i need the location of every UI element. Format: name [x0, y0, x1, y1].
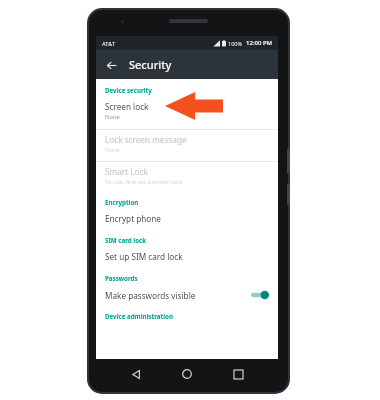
button[interactable]: Back [125, 363, 147, 385]
staticText: To use, first set a screen lock [105, 178, 183, 186]
staticText: Screen lock [105, 101, 149, 112]
button[interactable]: Home [176, 363, 198, 385]
button[interactable]: Recent apps [227, 363, 249, 385]
staticText: 12:00 PM [246, 39, 273, 47]
button[interactable]: Make passwords visible [96, 285, 278, 305]
staticText: Encryption [105, 198, 139, 206]
staticText: Device security [105, 86, 152, 94]
staticText: Smart Lock [105, 166, 148, 177]
button[interactable]: Encrypt phone [96, 209, 278, 228]
button: Smart Lock [96, 162, 278, 190]
staticText: AT&T [102, 40, 116, 47]
staticText: SIM card lock [105, 236, 147, 244]
staticText: Device administration [105, 312, 173, 320]
button: Lock screen message [96, 130, 278, 158]
staticText: None [105, 146, 120, 154]
staticText: Set up SIM card lock [105, 251, 183, 262]
button[interactable]: Screen lock [96, 97, 278, 125]
staticText: Lock screen message [105, 134, 187, 145]
staticText: Encrypt phone [105, 213, 161, 224]
button[interactable]: Make passwords visible toggle [250, 289, 270, 301]
staticText: Passwords [105, 274, 138, 282]
staticText: 100% [228, 40, 243, 47]
button[interactable]: Set up SIM card lock [96, 247, 278, 266]
button[interactable]: Back [100, 54, 122, 76]
staticText: None [105, 113, 120, 121]
staticText: Security [129, 57, 172, 72]
staticText: Make passwords visible [105, 290, 196, 301]
